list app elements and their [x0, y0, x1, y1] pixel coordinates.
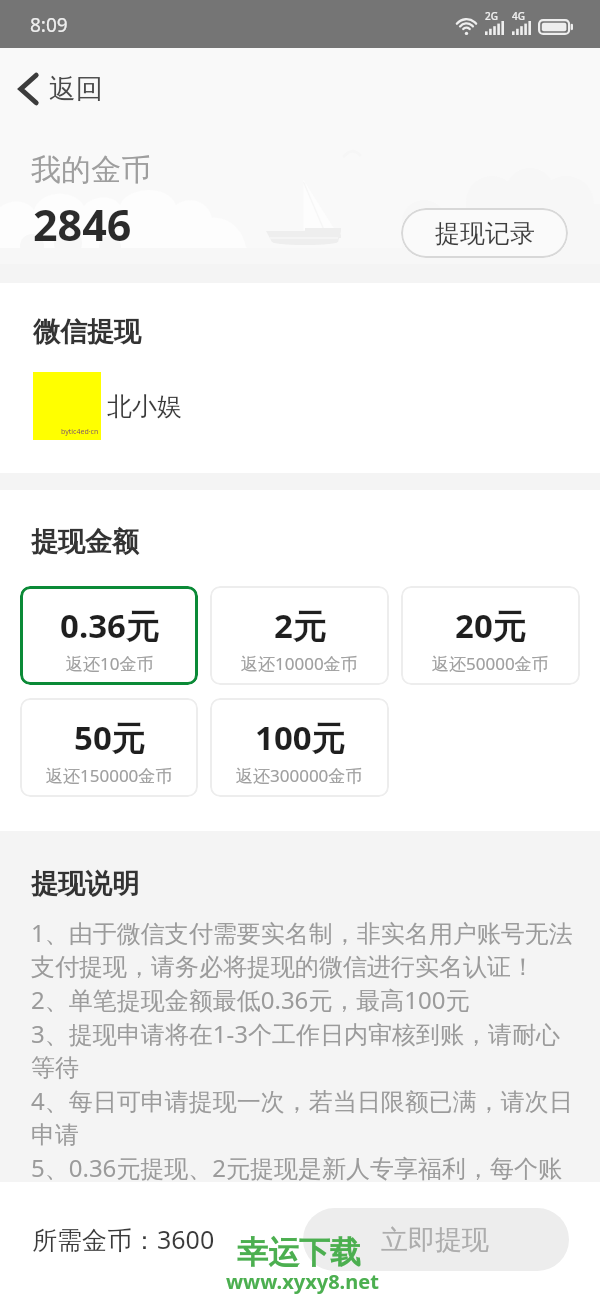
- staticText: 2G: [485, 9, 498, 23]
- button[interactable]: 100元: [210, 698, 389, 797]
- staticText: 返还10金币: [66, 652, 154, 675]
- button[interactable]: 20元: [401, 586, 580, 685]
- staticText: 幸运下载: [237, 1233, 361, 1272]
- staticText: 返还150000金币: [46, 764, 173, 787]
- staticText: 我的金币: [31, 151, 151, 189]
- staticText: 返还10000金币: [241, 652, 358, 675]
- staticText: bytic4ed·cn: [61, 427, 99, 437]
- staticText: 返回: [49, 72, 103, 106]
- staticText: 2846: [33, 195, 132, 254]
- staticText: 20元: [455, 603, 526, 648]
- staticText: 返还50000金币: [432, 652, 549, 675]
- staticText: 微信提现: [33, 315, 141, 349]
- staticText: 8:09: [30, 12, 68, 38]
- staticText: 返还300000金币: [236, 764, 363, 787]
- staticText: 2元: [274, 603, 326, 648]
- button[interactable]: 立即提现: [303, 1208, 569, 1271]
- staticText: 4G: [512, 9, 525, 23]
- staticText: 提现记录: [435, 218, 535, 249]
- staticText: 提现说明: [31, 867, 139, 901]
- staticText: 提现金额: [31, 525, 139, 559]
- staticText: 50元: [74, 715, 145, 760]
- staticText: 1、由于微信支付需要实名制，非实名用户账号无法支付提现，请务必将提现的微信进行实…: [31, 916, 576, 1182]
- staticText: 北小娱: [107, 391, 182, 422]
- staticText: 100元: [255, 715, 345, 760]
- button[interactable]: 返回: [0, 48, 600, 130]
- button[interactable]: 2元: [210, 586, 389, 685]
- staticText: 立即提现: [381, 1223, 489, 1257]
- button[interactable]: 50元: [20, 698, 198, 797]
- button[interactable]: 提现记录: [401, 208, 568, 258]
- staticText: www.xyxy8.net: [226, 1268, 379, 1295]
- staticText: 0.36元: [60, 603, 159, 648]
- staticText: 所需金币：3600: [32, 1222, 215, 1256]
- button[interactable]: 0.36元: [20, 586, 198, 685]
